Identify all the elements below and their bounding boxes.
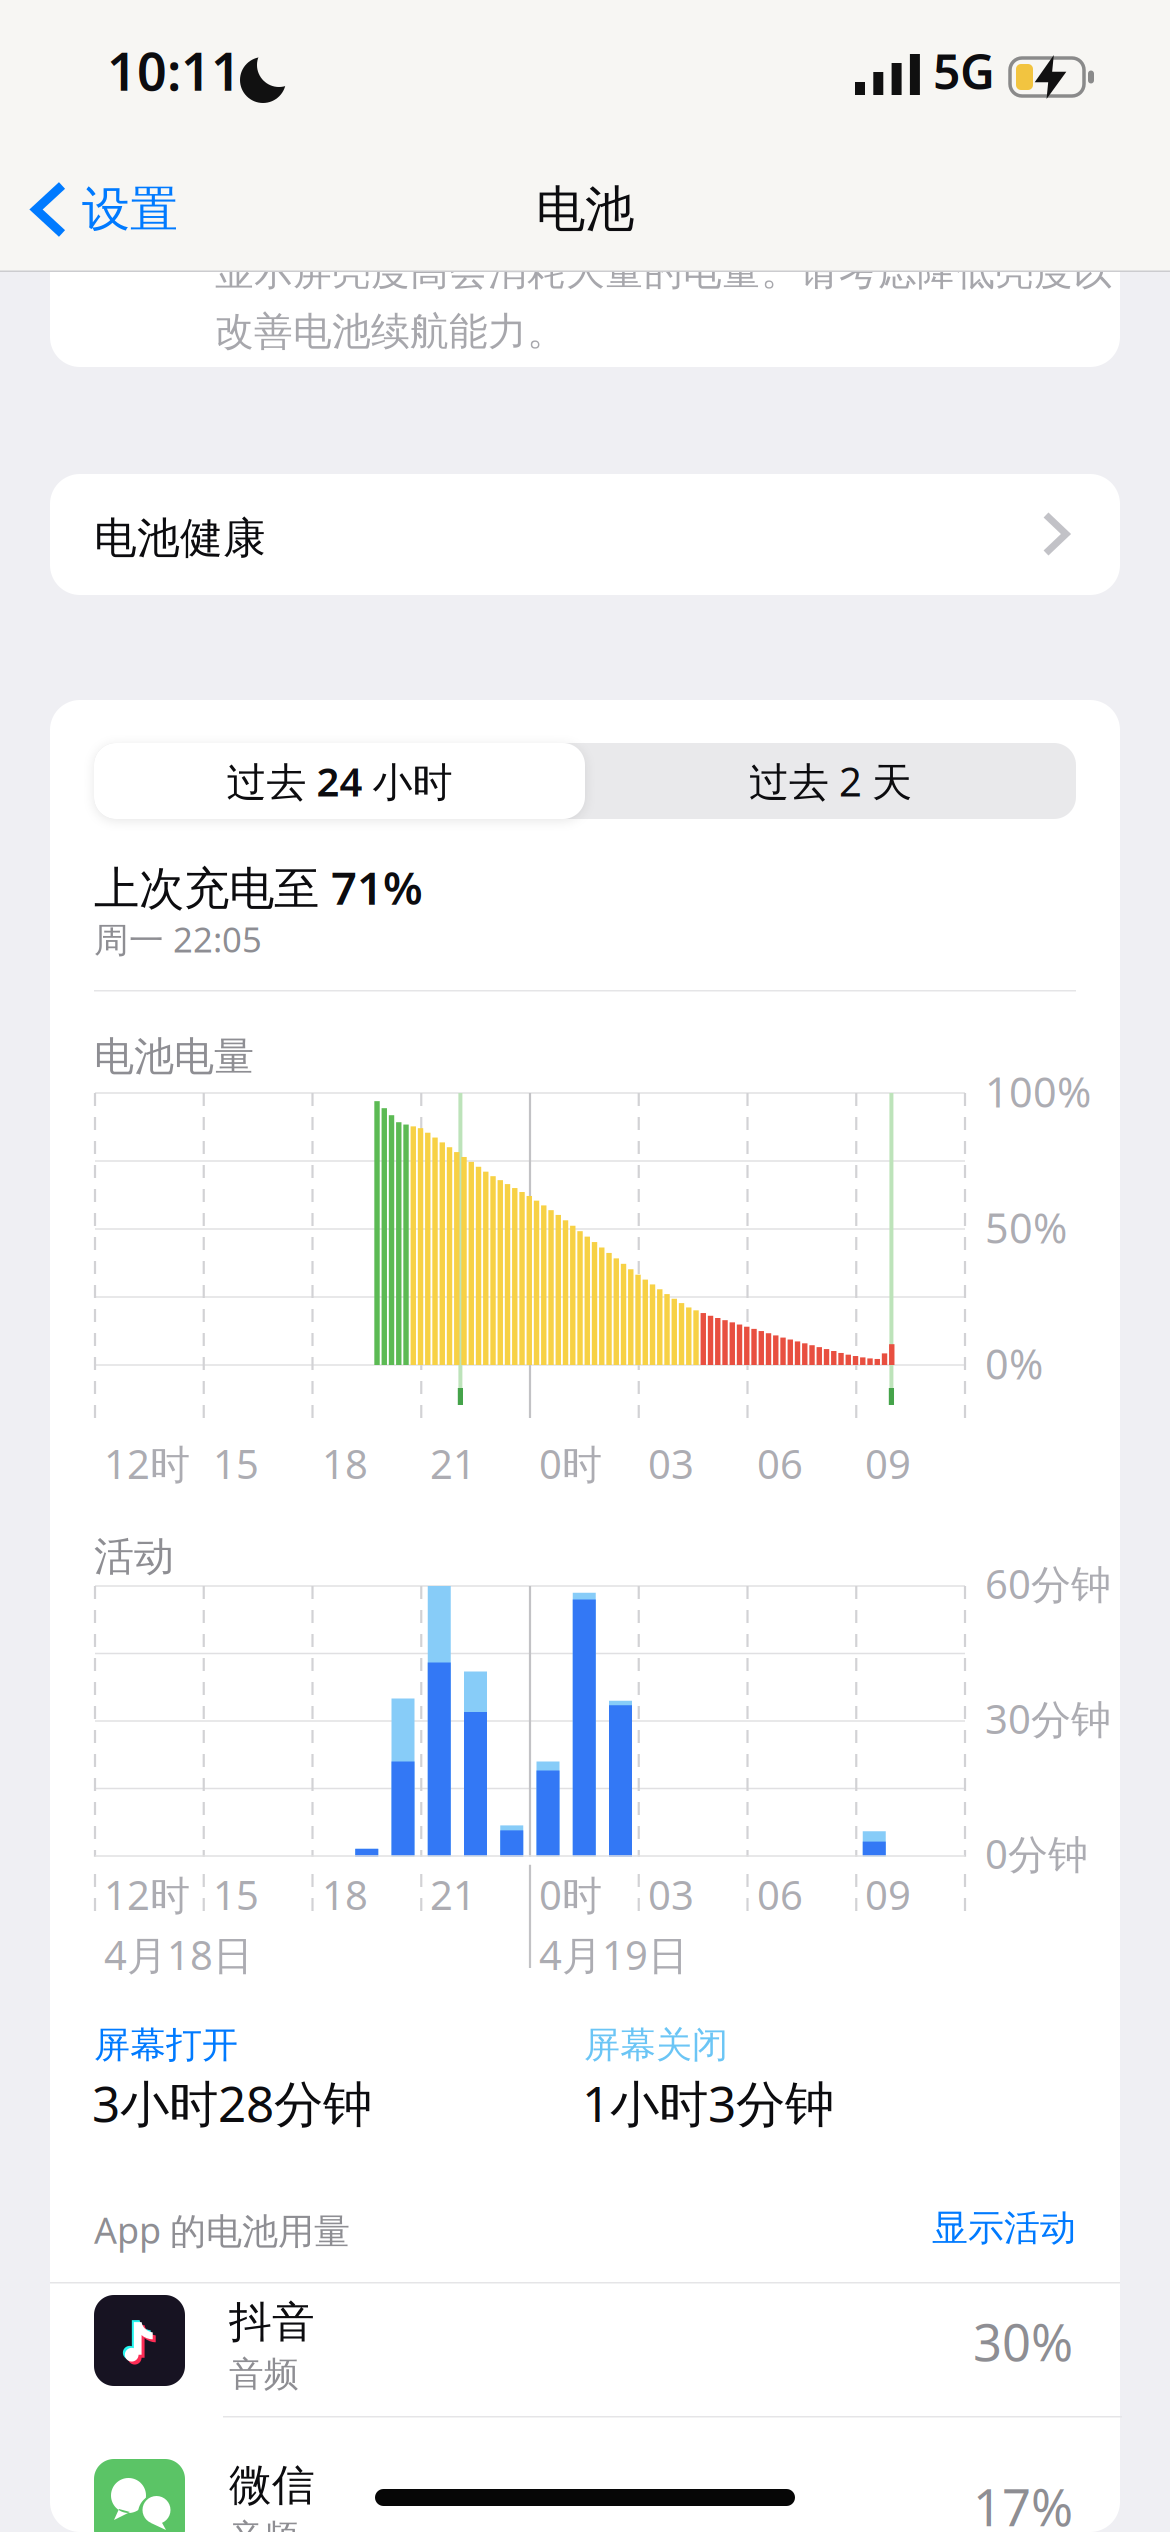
staticText: 周一 22:05 — [94, 916, 262, 962]
staticText: 4月18日 — [104, 1928, 253, 1981]
staticText: 5G — [933, 39, 995, 103]
staticText: 30分钟 — [985, 1692, 1111, 1745]
staticText: 03 — [648, 1437, 694, 1490]
staticText: 100% — [985, 1064, 1091, 1119]
button[interactable]: 微信 — [50, 2418, 1120, 2532]
staticText: 09 — [865, 1437, 911, 1490]
staticText: 屏幕打开 — [94, 2023, 238, 2067]
staticText: 设置 — [82, 180, 178, 239]
staticText: 30% — [973, 2308, 1073, 2375]
button[interactable]: 设置 — [36, 180, 178, 239]
staticText: 03 — [648, 1868, 694, 1921]
staticText: 4月19日 — [539, 1928, 688, 1981]
staticText: 音频 — [229, 2516, 299, 2532]
button[interactable]: 过去 2 天 — [585, 743, 1076, 819]
staticText: 17% — [973, 2473, 1073, 2532]
staticText: 过去 24 小时 — [226, 754, 452, 807]
button[interactable]: 显示活动 — [776, 2206, 1076, 2250]
button[interactable]: 过去 24 小时 — [94, 743, 585, 819]
staticText: 09 — [865, 1868, 911, 1921]
staticText: 10:11 — [107, 36, 241, 105]
staticText: 显示活动 — [932, 2206, 1076, 2250]
staticText: 抖音 — [229, 2296, 315, 2348]
staticText: 过去 2 天 — [749, 754, 912, 807]
staticText: 电池健康 — [94, 512, 266, 564]
staticText: 微信 — [229, 2459, 315, 2511]
staticText: 12时 — [104, 1868, 190, 1921]
staticText: 18 — [322, 1868, 368, 1921]
staticText: 上次充电至 71% — [94, 857, 423, 917]
button[interactable]: 抖音 — [50, 2283, 1120, 2405]
staticText: 1小时3分钟 — [582, 2070, 834, 2135]
staticText: 电池 — [536, 179, 634, 240]
staticText: 0时 — [539, 1868, 602, 1921]
staticText: 60分钟 — [985, 1557, 1111, 1610]
staticText: 15 — [213, 1868, 259, 1921]
staticText: 18 — [322, 1437, 368, 1490]
staticText: 0分钟 — [985, 1827, 1088, 1880]
staticText: 21 — [430, 1437, 476, 1490]
staticText: 06 — [757, 1868, 803, 1921]
staticText: 显示屏亮度高会消耗大量的电量。请考虑降低亮度以 — [215, 248, 1112, 295]
staticText: 12时 — [104, 1437, 190, 1490]
staticText: 21 — [430, 1868, 476, 1921]
staticText: 活动 — [94, 1532, 174, 1581]
staticText: 电池电量 — [94, 1032, 254, 1081]
staticText: 改善电池续航能力。 — [215, 308, 566, 355]
staticText: 0时 — [539, 1437, 602, 1490]
staticText: 06 — [757, 1437, 803, 1490]
staticText: App 的电池用量 — [94, 2206, 350, 2254]
staticText: 15 — [213, 1437, 259, 1490]
staticText: 3小时28分钟 — [92, 2070, 372, 2135]
staticText: 0% — [985, 1336, 1043, 1391]
staticText: 50% — [985, 1200, 1067, 1255]
staticText: 屏幕关闭 — [584, 2023, 728, 2067]
staticText: 音频 — [229, 2353, 299, 2396]
button[interactable]: 电池健康 — [50, 474, 1120, 595]
